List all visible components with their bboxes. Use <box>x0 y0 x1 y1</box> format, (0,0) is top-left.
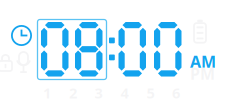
staticText: 6 <box>172 83 180 102</box>
staticText: 4 <box>120 83 128 102</box>
staticText: 1 <box>43 83 51 102</box>
button[interactable]: PM <box>190 63 215 84</box>
button[interactable]: Lock <box>0 53 12 71</box>
button[interactable]: Voice input <box>16 52 31 73</box>
button[interactable]: Alarm time <box>9 23 34 48</box>
button[interactable]: 6 <box>172 83 180 102</box>
button[interactable]: AM <box>190 51 216 72</box>
staticText: AM <box>190 51 216 72</box>
staticText: 2 <box>69 83 77 102</box>
button[interactable]: 5 <box>146 83 154 102</box>
button[interactable]: 4 <box>120 83 128 102</box>
staticText: 5 <box>146 83 154 102</box>
button[interactable]: 3 <box>94 83 102 102</box>
staticText: PM <box>190 63 215 84</box>
button[interactable]: 1 <box>43 83 51 102</box>
staticText: 3 <box>94 83 102 102</box>
button[interactable]: 2 <box>69 83 77 102</box>
